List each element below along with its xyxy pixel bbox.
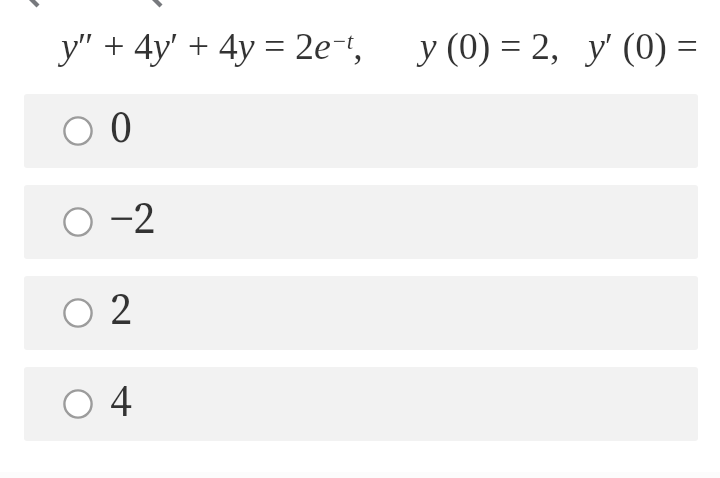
staticText: 0 bbox=[110, 96, 132, 156]
staticText: y″ + 4y′ + 4y = 2e−t, y (0) = 2, y′ (0) … bbox=[61, 25, 708, 67]
button[interactable]: Answer choice 4 bbox=[24, 367, 698, 441]
staticText: 2 bbox=[110, 278, 132, 338]
button[interactable]: Answer choice −2 bbox=[24, 185, 698, 259]
button[interactable]: Answer choice 0 bbox=[24, 94, 698, 168]
staticText: 4 bbox=[110, 369, 132, 429]
button[interactable]: Answer choice 2 bbox=[24, 276, 698, 350]
staticText: −2 bbox=[110, 187, 156, 247]
